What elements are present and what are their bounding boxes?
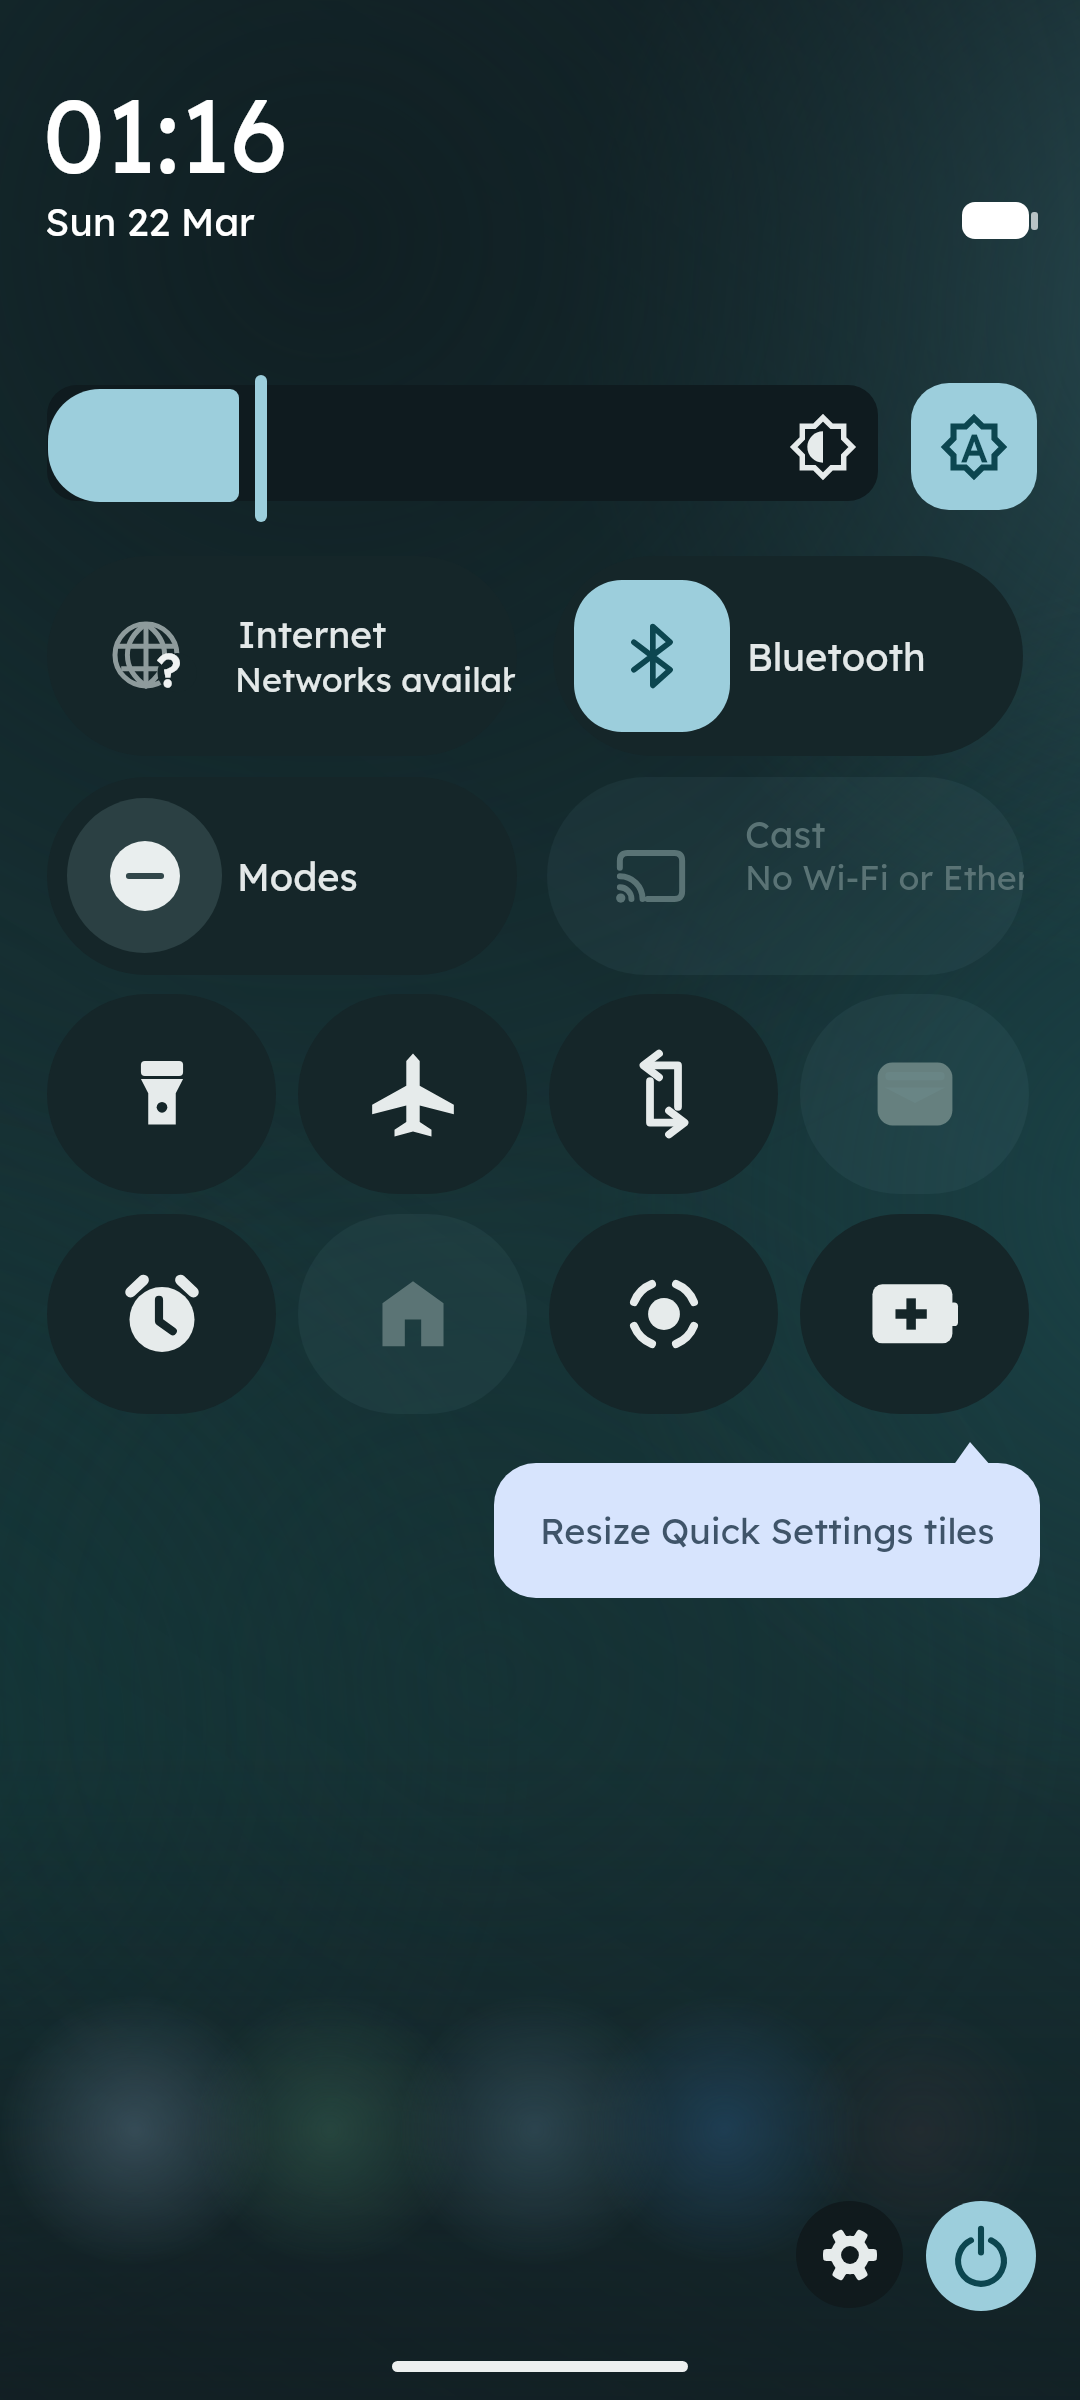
staticText: Internet bbox=[238, 611, 387, 657]
button[interactable]: Modes bbox=[47, 777, 517, 975]
button[interactable]: Resize Quick Settings tiles bbox=[494, 1463, 1040, 1598]
staticText: ? bbox=[157, 640, 182, 699]
button[interactable]: Settings bbox=[796, 2201, 903, 2308]
button[interactable]: ? bbox=[47, 556, 517, 756]
staticText: Resize Quick Settings tiles bbox=[540, 1508, 995, 1553]
button[interactable]: Auto brightness bbox=[911, 383, 1037, 510]
button[interactable]: Auto-rotate bbox=[549, 994, 778, 1194]
staticText: 01:16 bbox=[43, 71, 287, 199]
button[interactable]: Airplane mode bbox=[298, 994, 527, 1194]
button[interactable]: Screen record bbox=[549, 1214, 778, 1414]
staticText: A bbox=[961, 424, 988, 472]
staticText: Sun 22 Mar bbox=[45, 197, 255, 246]
staticText: Cast bbox=[745, 811, 826, 857]
staticText: Networks available bbox=[235, 658, 517, 701]
button[interactable]: Bluetooth bbox=[553, 556, 1023, 756]
staticText: Modes bbox=[237, 853, 358, 901]
button[interactable]: Battery saver bbox=[800, 1214, 1029, 1414]
button[interactable]: Alarm bbox=[47, 1214, 276, 1414]
staticText: Bluetooth bbox=[747, 633, 926, 681]
button[interactable]: Cast bbox=[547, 777, 1024, 975]
button[interactable]: Brightness bbox=[47, 385, 878, 501]
button[interactable]: Wallet bbox=[800, 994, 1029, 1194]
button[interactable]: Power bbox=[926, 2201, 1036, 2311]
staticText: No Wi-Fi or Ethernet bbox=[745, 856, 1024, 899]
button[interactable]: Device controls bbox=[298, 1214, 527, 1414]
button[interactable]: Flashlight bbox=[47, 994, 276, 1194]
